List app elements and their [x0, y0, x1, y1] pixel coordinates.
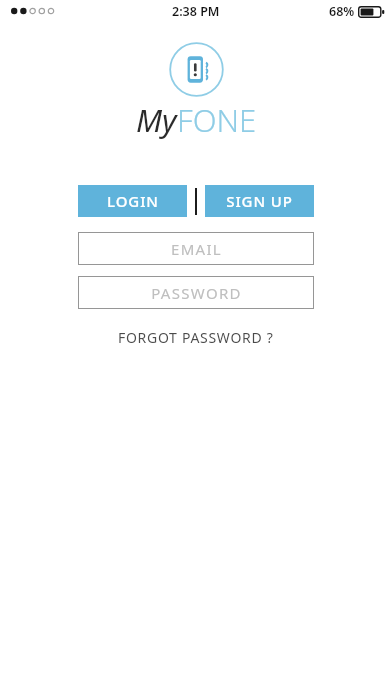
staticText: 68%	[329, 3, 355, 20]
staticText: LOGIN	[107, 191, 159, 211]
staticText: EMAIL	[171, 239, 222, 259]
button[interactable]: LOGIN	[78, 185, 187, 217]
staticText: PASSWORD	[151, 283, 242, 303]
staticText: My	[136, 99, 177, 141]
button[interactable]: SIGN UP	[205, 185, 314, 217]
staticText: FORGOT PASSWORD ?	[118, 328, 274, 347]
button[interactable]: EMAIL	[78, 232, 314, 265]
staticText: FONE	[177, 99, 257, 141]
button[interactable]: PASSWORD	[78, 276, 314, 309]
button[interactable]: FORGOT PASSWORD ?	[0, 326, 392, 348]
staticText: 2:38 PM	[172, 3, 220, 20]
staticText: SIGN UP	[226, 191, 293, 211]
